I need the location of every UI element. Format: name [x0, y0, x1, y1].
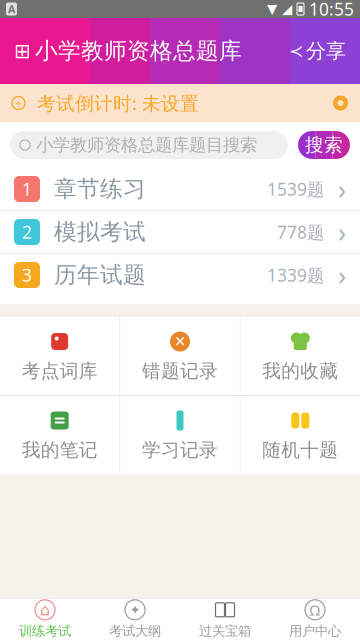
staticText: ⌂ — [40, 601, 50, 619]
button[interactable]: ✕ — [120, 317, 240, 395]
staticText: 考试倒计时: 未设置 — [25, 91, 199, 115]
button[interactable]: 分享 — [289, 39, 346, 63]
button[interactable]: 随机十题 — [241, 396, 360, 474]
staticText: 搜索 — [305, 133, 343, 156]
staticText: 1 — [22, 177, 32, 200]
button[interactable]: 过关宝箱 — [180, 598, 270, 640]
staticText: ≺ — [289, 41, 304, 61]
staticText: 10:55 — [309, 0, 354, 20]
staticText: 过关宝箱 — [199, 623, 251, 639]
staticText: 2 — [22, 220, 32, 243]
button[interactable]: 2 — [0, 211, 360, 253]
staticText: 1339题 — [267, 263, 324, 286]
staticText: 小学教师资格总题库 — [35, 37, 242, 65]
button[interactable]: 考点词库 — [0, 317, 119, 395]
staticText: 学习记录 — [142, 438, 218, 461]
button[interactable]: ⌂ — [0, 598, 90, 640]
staticText: 考试大纲 — [109, 623, 161, 639]
staticText: Ω — [309, 600, 320, 620]
staticText: 778题 — [277, 220, 324, 243]
staticText: 我的笔记 — [22, 438, 98, 461]
staticText: A — [8, 2, 15, 16]
staticText: 考点词库 — [22, 359, 98, 382]
button[interactable]: 3 — [0, 254, 360, 296]
staticText: 训练考试 — [19, 623, 71, 639]
staticText: 错题记录 — [142, 359, 218, 382]
button[interactable]: 我的笔记 — [0, 396, 119, 474]
staticText: 章节练习 — [40, 175, 146, 203]
staticText: ▼ — [267, 1, 277, 16]
staticText: + — [15, 96, 21, 110]
staticText: 3 — [22, 263, 32, 286]
button[interactable]: 1 — [0, 168, 360, 210]
button[interactable]: 我的收藏 — [241, 317, 360, 395]
button[interactable]: 学习记录 — [120, 396, 240, 474]
staticText: › — [324, 214, 346, 250]
staticText: › — [324, 171, 346, 207]
staticText: ◢ — [282, 1, 292, 16]
button[interactable]: ⊞ — [14, 37, 242, 65]
staticText: 小学教师资格总题库题目搜索 — [36, 134, 257, 156]
staticText: ⊞ — [14, 40, 31, 62]
staticText: 我的收藏 — [262, 359, 338, 382]
button[interactable]: Ω — [270, 598, 360, 640]
staticText: 分享 — [306, 39, 346, 63]
staticText: 随机十题 — [262, 438, 338, 461]
staticText: › — [324, 257, 346, 293]
staticText: ✕ — [174, 333, 186, 350]
staticText: 1539题 — [267, 177, 324, 200]
button[interactable]: ✦ — [90, 598, 180, 640]
button[interactable]: + — [0, 84, 360, 122]
staticText: 用户中心 — [289, 623, 341, 639]
staticText: 历年试题 — [40, 261, 146, 289]
staticText: 模拟考试 — [40, 218, 146, 246]
staticText: ✦ — [129, 602, 140, 617]
button[interactable]: 搜索 — [298, 131, 350, 159]
